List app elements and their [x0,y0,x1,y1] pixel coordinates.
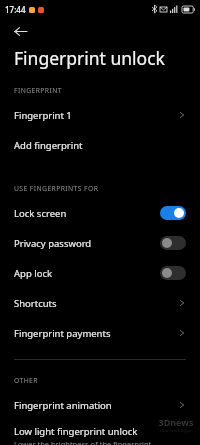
staticText: Hard, Soft & Digital [160,428,192,433]
staticText: Shortcuts [14,297,178,310]
staticText: FINGERPRINT [14,86,62,95]
staticText: Fingerprint unlock [14,46,165,70]
button[interactable]: Back [8,19,32,43]
staticText: Fingerprint animation [14,399,178,412]
staticText: Fingerprint payments [14,327,178,340]
button[interactable]: Fingerprint animation [0,390,200,420]
staticText: Lower the brightness of the fingerprint [14,439,152,445]
button[interactable]: Privacy password [0,228,200,258]
button[interactable]: Add fingerprint [0,130,200,160]
button[interactable]: Shortcuts [0,288,200,318]
button[interactable]: App lock [0,258,200,288]
staticText: OTHER [14,376,38,385]
button[interactable]: Lock screen [0,198,200,228]
staticText: App lock [14,267,160,280]
staticText: Low light fingerprint unlock [14,425,138,438]
staticText: Add fingerprint [14,139,186,152]
button[interactable]: Fingerprint payments [0,318,200,348]
staticText: 17:44 [5,4,26,15]
button[interactable]: Fingerprint 1 [0,100,200,130]
button[interactable]: Low light fingerprint unlock [0,420,200,445]
staticText: Lock screen [14,207,160,220]
staticText: 3Dnews [158,416,194,428]
staticText: Privacy password [14,237,160,250]
staticText: USE FINGERPRINTS FOR [14,184,99,193]
staticText: Fingerprint 1 [14,109,178,122]
